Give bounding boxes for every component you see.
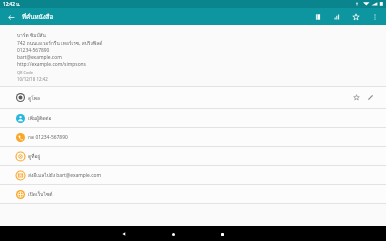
button[interactable]: ดูโพล <box>0 87 386 108</box>
staticText: เพิ่มผู้ติดต่อ <box>28 114 386 122</box>
staticText: ส่งอีเมลไปยัง bart@example.com <box>28 171 386 179</box>
button[interactable]: เปิดเว็บไซต์ <box>0 185 386 203</box>
staticText: เปิดเว็บไซต์ <box>28 190 386 198</box>
button[interactable]: Recent apps <box>215 227 229 241</box>
button[interactable]: Share <box>330 10 343 23</box>
staticText: ดูโพล <box>28 94 350 102</box>
staticText: 01234-567890 <box>17 47 50 54</box>
staticText: ดูที่อยู่ <box>28 152 386 160</box>
staticText: ที่คั่นหนังสือ <box>22 12 54 22</box>
button[interactable]: Add to favourites <box>349 10 362 23</box>
staticText: กด 01234-567890 <box>28 133 386 141</box>
button[interactable]: เพิ่มผู้ติดต่อ <box>0 109 386 127</box>
button[interactable]: Navigate up <box>5 11 17 23</box>
button[interactable]: More options <box>368 10 381 23</box>
staticText: 12:42 น. <box>3 1 21 8</box>
button[interactable]: กด 01234-567890 <box>0 128 386 146</box>
button[interactable]: Favourite <box>350 91 363 104</box>
button[interactable]: Edit <box>364 91 377 104</box>
button[interactable]: Home <box>166 227 180 241</box>
staticText: บาร์ต ซิมป์สัน <box>17 31 46 39</box>
button[interactable]: ดูที่อยู่ <box>0 147 386 165</box>
staticText: 742 ถนนเอเวอร์กรีน เทอร์เรซ, สปริงฟิลด์ <box>17 39 103 47</box>
staticText: 10/12/18 12:42 <box>17 76 48 82</box>
button[interactable]: Back <box>117 227 131 241</box>
staticText: bart@example.com <box>17 54 62 61</box>
button[interactable]: ส่งอีเมลไปยัง bart@example.com <box>0 166 386 184</box>
button[interactable]: Bookmarks <box>311 10 324 23</box>
staticText: QR Code <box>17 70 33 75</box>
staticText: http://example.com/simpsons <box>17 61 86 68</box>
